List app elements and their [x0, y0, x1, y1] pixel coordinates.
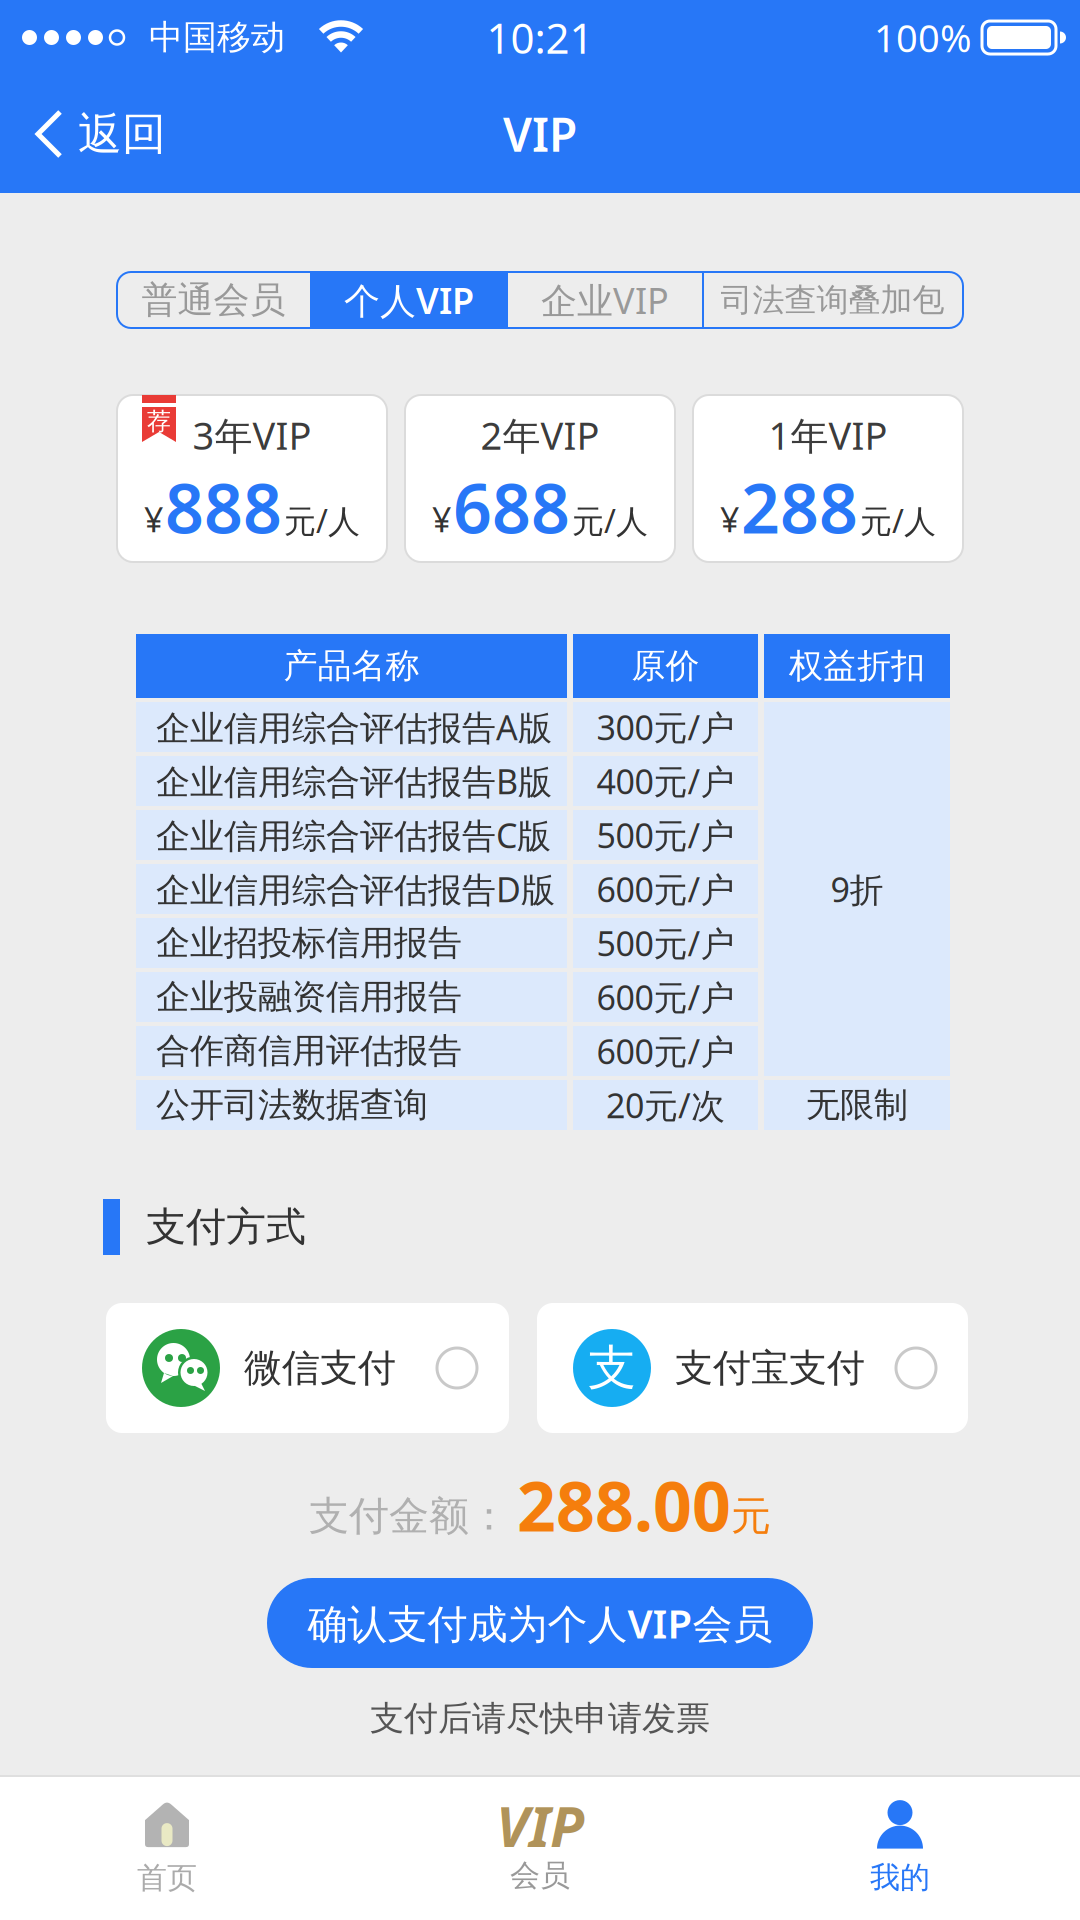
staticText: 3年VIP — [192, 409, 311, 461]
staticText: 权益折扣 — [789, 645, 925, 687]
staticText: 普通会员 — [141, 277, 285, 323]
staticText: 元/人 — [284, 499, 360, 542]
staticText: 无限制 — [806, 1084, 908, 1126]
staticText: 企业招投标信用报告 — [156, 922, 462, 964]
button[interactable]: 3年VIP — [117, 395, 387, 562]
staticText: 支付后请尽快申请发票 — [370, 1697, 710, 1740]
button[interactable]: 支 — [537, 1303, 968, 1433]
staticText: 首页 — [137, 1859, 197, 1897]
staticText: 688 — [453, 461, 570, 553]
button[interactable]: 2年VIP — [405, 395, 675, 562]
staticText: 企业信用综合评估报告C版 — [156, 812, 551, 858]
button[interactable]: 1年VIP — [693, 395, 963, 562]
button[interactable]: 返回 — [0, 106, 166, 162]
staticText: 确认支付成为个人VIP会员 — [307, 1596, 772, 1650]
staticText: 支 — [588, 1338, 636, 1398]
staticText: 100% — [874, 12, 972, 63]
staticText: ¥ — [144, 496, 163, 542]
staticText: 1年VIP — [768, 409, 887, 461]
staticText: 合作商信用评估报告 — [156, 1030, 462, 1072]
staticText: 企业信用综合评估报告B版 — [156, 758, 552, 804]
staticText: 600元/户 — [596, 866, 734, 912]
button[interactable]: 企业VIP — [508, 272, 702, 328]
staticText: 2年VIP — [480, 409, 599, 461]
staticText: 支付宝支付 — [675, 1344, 865, 1392]
staticText: 300元/户 — [596, 704, 734, 750]
staticText: 中国移动 — [149, 16, 285, 59]
staticText: 500元/户 — [596, 920, 734, 966]
staticText: 600元/户 — [596, 1028, 734, 1074]
staticText: 支付方式 — [146, 1202, 306, 1252]
staticText: 288 — [741, 461, 858, 553]
staticText: 企业信用综合评估报告A版 — [156, 704, 552, 750]
staticText: 10:21 — [486, 9, 593, 66]
button[interactable]: 个人VIP — [310, 272, 508, 328]
button[interactable]: 确认支付成为个人VIP会员 — [267, 1578, 813, 1668]
button[interactable]: VIP — [360, 1777, 720, 1920]
staticText: 产品名称 — [283, 645, 419, 687]
staticText: 20元/次 — [606, 1082, 725, 1128]
staticText: 500元/户 — [596, 812, 734, 858]
staticText: 我的 — [870, 1859, 930, 1896]
staticText: 会员 — [510, 1857, 570, 1894]
staticText: 元 — [731, 1491, 771, 1541]
staticText: 企业投融资信用报告 — [156, 976, 462, 1018]
staticText: 司法查询叠加包 — [720, 280, 944, 320]
staticText: 888 — [165, 461, 282, 553]
button[interactable]: 首页 — [0, 1777, 360, 1920]
staticText: 400元/户 — [596, 758, 734, 804]
staticText: VIP — [503, 103, 577, 165]
button[interactable]: 我的 — [720, 1777, 1080, 1920]
staticText: 600元/户 — [596, 974, 734, 1020]
button[interactable]: 微信支付 — [106, 1303, 509, 1433]
staticText: 原价 — [631, 645, 699, 687]
staticText: 微信支付 — [244, 1344, 396, 1392]
staticText: ¥ — [720, 496, 739, 542]
button[interactable]: 司法查询叠加包 — [702, 272, 963, 328]
staticText: 支付金额： — [309, 1491, 509, 1541]
staticText: 元/人 — [572, 499, 648, 542]
button[interactable]: 普通会员 — [117, 272, 310, 328]
staticText: 288.00 — [517, 1459, 731, 1551]
staticText: 荐 — [147, 406, 171, 437]
staticText: VIP — [496, 1787, 584, 1864]
staticText: ¥ — [432, 496, 451, 542]
staticText: 返回 — [78, 106, 166, 162]
staticText: 企业VIP — [541, 275, 669, 324]
staticText: 企业信用综合评估报告D版 — [156, 866, 555, 912]
staticText: 9折 — [830, 866, 883, 912]
staticText: 公开司法数据查询 — [156, 1084, 428, 1126]
staticText: 元/人 — [860, 499, 936, 542]
staticText: 个人VIP — [344, 275, 474, 324]
